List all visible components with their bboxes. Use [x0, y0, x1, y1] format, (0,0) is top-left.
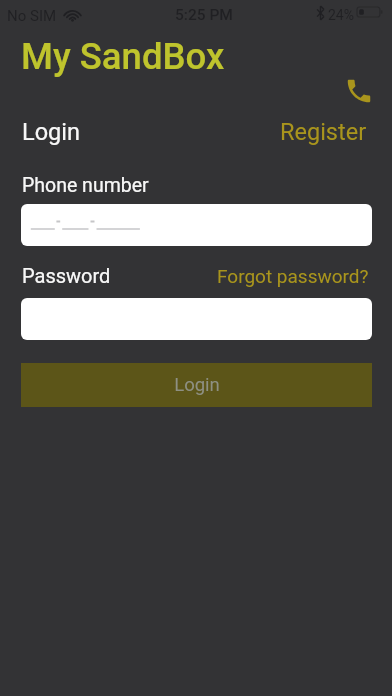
- staticText: My SandBox: [21, 35, 225, 78]
- button[interactable]: Login: [21, 363, 372, 407]
- button[interactable]: [340, 72, 378, 110]
- staticText: Register: [280, 118, 367, 146]
- staticText: 24%: [328, 7, 354, 23]
- staticText: Forgot password?: [217, 265, 369, 287]
- button[interactable]: [21, 204, 372, 246]
- button[interactable]: Forgot password?: [217, 265, 369, 287]
- staticText: No SIM: [7, 7, 57, 25]
- staticText: Password: [22, 264, 111, 287]
- staticText: 5:25 PM: [175, 6, 233, 24]
- button[interactable]: Register: [280, 118, 367, 146]
- staticText: Login: [22, 118, 80, 146]
- staticText: Login: [174, 374, 220, 396]
- staticText: Phone number: [22, 174, 149, 197]
- button[interactable]: [21, 298, 372, 340]
